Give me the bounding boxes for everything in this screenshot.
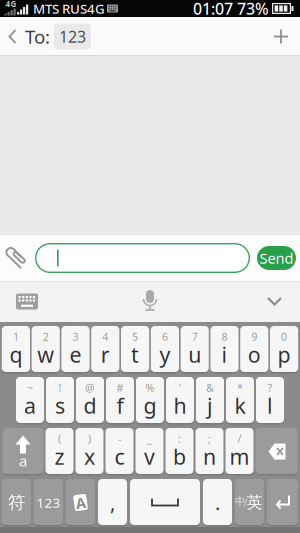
staticText: * <box>237 380 243 395</box>
staticText: # <box>116 380 123 395</box>
button[interactable]: u <box>181 326 209 372</box>
button[interactable]: Keyboard <box>0 293 38 309</box>
button[interactable]: Attach <box>0 243 29 273</box>
button[interactable]: Back <box>0 28 25 44</box>
staticText: r <box>101 340 110 369</box>
button[interactable]: f <box>106 377 134 423</box>
staticText: 1 <box>13 329 19 344</box>
staticText: 6 <box>162 329 168 344</box>
staticText: ) <box>88 431 91 446</box>
staticText: 4 <box>102 329 108 344</box>
button[interactable]: v <box>135 428 163 474</box>
staticText: / <box>237 431 241 446</box>
button[interactable]: m <box>225 428 253 474</box>
button[interactable]: , <box>98 479 127 525</box>
staticText: 5 <box>132 329 138 344</box>
button[interactable]: k <box>226 377 254 423</box>
button[interactable]: w <box>32 326 60 372</box>
staticText: & <box>206 380 214 395</box>
staticText: f <box>116 391 123 420</box>
staticText: _ <box>147 431 152 446</box>
button[interactable]: h <box>166 377 194 423</box>
staticText: s <box>55 391 65 420</box>
staticText: @ <box>85 380 95 395</box>
button[interactable]: j <box>196 377 224 423</box>
button[interactable]: 123 <box>50 24 91 49</box>
button[interactable]: y <box>151 326 179 372</box>
staticText: e <box>69 340 81 369</box>
button[interactable]: q <box>2 326 30 372</box>
staticText: ~ <box>27 380 33 395</box>
staticText: 8 <box>221 329 227 344</box>
button[interactable]: Chinese/English <box>235 479 264 525</box>
button[interactable]: Voice input <box>142 290 158 313</box>
button[interactable]: 符 <box>2 479 31 525</box>
staticText: 4G <box>5 0 16 9</box>
staticText: 3 <box>72 329 78 344</box>
button[interactable]: d <box>76 377 104 423</box>
staticText: q <box>9 340 22 369</box>
button[interactable]: a <box>16 377 44 423</box>
button[interactable]: g <box>136 377 164 423</box>
button[interactable]: i <box>210 326 239 372</box>
button[interactable]: b <box>165 428 193 474</box>
staticText: 123 <box>36 494 60 511</box>
staticText: u <box>188 340 201 369</box>
staticText: - <box>118 431 121 446</box>
staticText: ; <box>208 431 211 446</box>
button[interactable]: Shift <box>2 428 43 474</box>
staticText: i <box>221 340 227 369</box>
button[interactable]: l <box>256 377 284 423</box>
staticText: a <box>24 391 36 420</box>
staticText: a <box>19 451 27 470</box>
button[interactable]: 123 <box>34 479 63 525</box>
button[interactable]: Send <box>250 246 300 270</box>
staticText: k <box>234 391 245 420</box>
staticText: . <box>215 489 220 516</box>
staticText: 7 <box>192 329 198 344</box>
staticText: l <box>267 391 273 420</box>
staticText: 符 <box>8 492 25 513</box>
staticText: ' <box>179 380 181 395</box>
staticText: / <box>243 495 247 510</box>
staticText: , <box>110 489 115 516</box>
staticText: 英 <box>246 493 262 512</box>
staticText: ( <box>58 431 61 446</box>
staticText: 2 <box>43 329 49 344</box>
button[interactable]: Add recipient <box>274 29 300 43</box>
staticText: t <box>131 340 139 369</box>
staticText: p <box>278 340 291 369</box>
staticText: x <box>84 442 95 471</box>
staticText: v <box>144 442 155 471</box>
button[interactable]: o <box>240 326 268 372</box>
button[interactable]: Hide keyboard <box>267 297 300 306</box>
button[interactable]: p <box>270 326 298 372</box>
staticText: y <box>159 340 170 369</box>
button[interactable]: Input method <box>66 479 95 525</box>
staticText: h <box>173 391 186 420</box>
staticText: Send <box>259 248 293 268</box>
staticText: To: <box>25 24 50 49</box>
staticText: : <box>178 431 181 446</box>
button[interactable]: s <box>46 377 74 423</box>
staticText: b <box>173 442 186 471</box>
button[interactable]: n <box>195 428 223 474</box>
staticText: j <box>207 391 213 420</box>
staticText: o <box>248 340 261 369</box>
button[interactable]: Delete <box>255 428 297 474</box>
button[interactable]: e <box>61 326 90 372</box>
button[interactable]: . <box>203 479 232 525</box>
button[interactable]: z <box>45 428 73 474</box>
button[interactable]: c <box>105 428 133 474</box>
staticText: 123 <box>59 26 86 47</box>
staticText: z <box>54 442 64 471</box>
button[interactable]: t <box>121 326 149 372</box>
button[interactable]: Return <box>267 479 298 525</box>
button[interactable]: r <box>91 326 119 372</box>
button[interactable]: x <box>75 428 103 474</box>
staticText: d <box>83 391 96 420</box>
staticText: c <box>114 442 124 471</box>
staticText: % <box>145 380 154 395</box>
button[interactable]: Space <box>130 479 200 525</box>
staticText: 中 <box>235 495 246 508</box>
